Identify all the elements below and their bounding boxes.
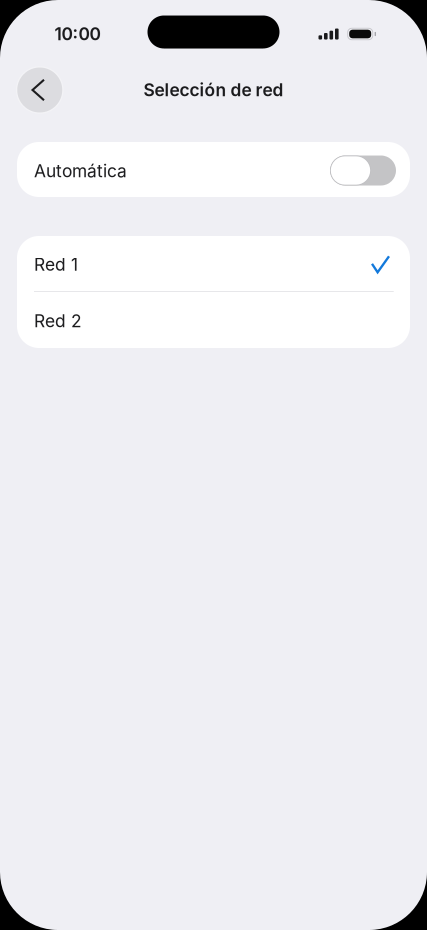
button[interactable]: Red 1 <box>17 236 410 291</box>
button[interactable]: Red 2 <box>17 292 410 348</box>
staticText: Red 1 <box>34 254 78 275</box>
staticText: 10:00 <box>54 23 100 44</box>
staticText: Automática <box>34 160 127 181</box>
staticText: Red 2 <box>34 310 82 331</box>
staticText: Selección de red <box>143 79 283 100</box>
button[interactable]: Automática <box>17 142 410 197</box>
button[interactable]: Back <box>16 62 63 110</box>
